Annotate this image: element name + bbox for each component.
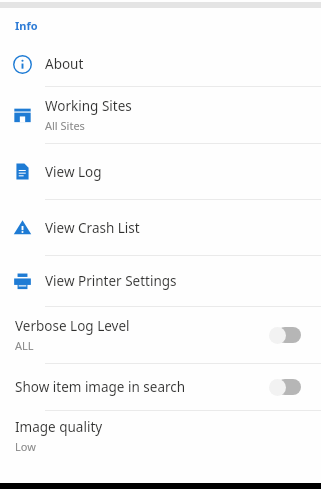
button[interactable]: Image quality [0, 411, 321, 461]
staticText: Info [15, 18, 38, 33]
button[interactable]: View Crash List [0, 200, 321, 255]
staticText: Verbose Log Level [15, 317, 130, 335]
button[interactable]: Verbose Log Level [0, 307, 321, 363]
button[interactable]: About [0, 42, 321, 86]
staticText: View Log [45, 163, 102, 181]
button[interactable]: Toggle [269, 324, 303, 346]
button[interactable]: View Printer Settings [0, 256, 321, 306]
button[interactable]: Working Sites [0, 87, 321, 143]
button[interactable]: Toggle [269, 376, 303, 398]
staticText: Show item image in search [15, 378, 186, 396]
staticText: View Printer Settings [45, 272, 177, 290]
staticText: Image quality [15, 418, 103, 436]
staticText: All Sites [45, 118, 85, 133]
staticText: View Crash List [45, 219, 140, 237]
staticText: ALL [15, 338, 34, 353]
staticText: Low [15, 439, 36, 454]
staticText: Working Sites [45, 97, 132, 115]
button[interactable]: Show item image in search [0, 364, 321, 410]
button[interactable]: View Log [0, 144, 321, 199]
staticText: About [45, 55, 84, 73]
